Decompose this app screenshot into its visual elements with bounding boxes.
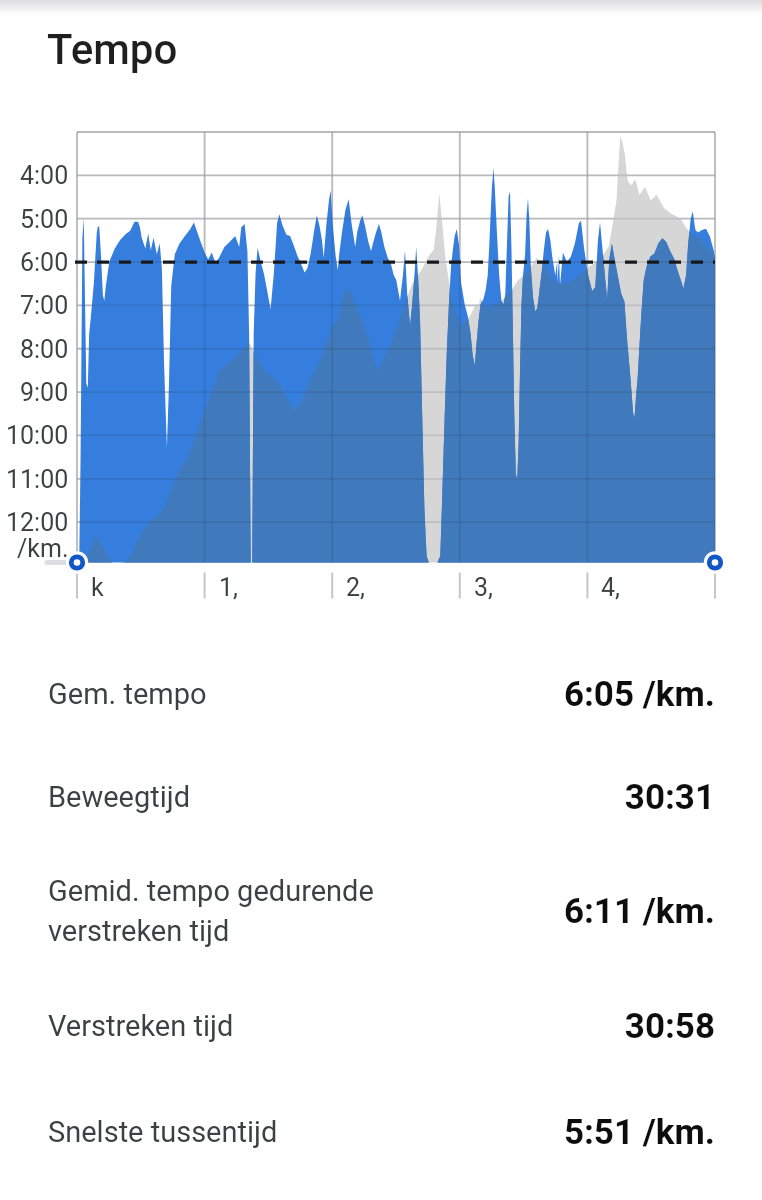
button[interactable]: Gem. tempo (0, 642, 762, 746)
staticText: 1, (219, 573, 238, 602)
staticText: 3, (474, 573, 493, 602)
staticText: Snelste tussentijd (48, 1115, 563, 1149)
button[interactable]: Startpunt van bereik verplaatsen (53, 539, 101, 587)
staticText: 2, (346, 573, 365, 602)
staticText: 5:51 /km. (563, 1112, 715, 1153)
staticText: k (91, 573, 104, 602)
staticText: Tempo (47, 25, 178, 74)
staticText: 30:58 (624, 1006, 715, 1047)
staticText: Gemid. tempo gedurende verstreken tijd (48, 874, 563, 949)
staticText: Beweegtijd (48, 780, 624, 814)
staticText: 4:00 (20, 161, 69, 190)
staticText: 12:00 (6, 508, 69, 537)
staticText: 11:00 (6, 465, 69, 494)
staticText: /km. (17, 534, 69, 563)
staticText: 9:00 (20, 378, 69, 407)
button[interactable]: Gemid. tempo gedurende verstreken tijd (0, 859, 762, 963)
staticText: 30:31 (624, 777, 715, 818)
staticText: 7:00 (20, 291, 69, 320)
button[interactable]: Verstreken tijd (0, 974, 762, 1078)
button[interactable]: Snelste tussentijd (0, 1080, 762, 1184)
button[interactable]: Beweegtijd (0, 745, 762, 849)
staticText: 8:00 (20, 335, 69, 364)
button[interactable]: Eindpunt van bereik verplaatsen (691, 539, 739, 587)
staticText: 10:00 (6, 421, 69, 450)
staticText: 4, (601, 573, 620, 602)
staticText: 6:00 (20, 248, 69, 277)
staticText: Gem. tempo (48, 677, 563, 711)
staticText: 6:05 /km. (563, 674, 715, 715)
staticText: Verstreken tijd (48, 1009, 624, 1043)
staticText: 6:11 /km. (563, 891, 715, 932)
staticText: 5:00 (20, 205, 69, 234)
